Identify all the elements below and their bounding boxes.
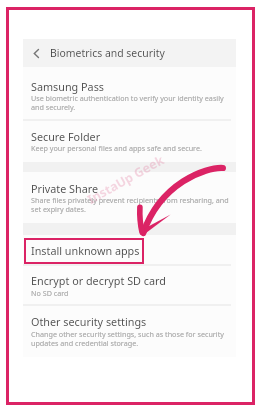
staticText: Secure Folder [31, 129, 101, 144]
staticText: Encrypt or decrypt SD card [31, 273, 166, 288]
button[interactable] [23, 72, 236, 119]
staticText: Install unknown apps [31, 243, 140, 258]
staticText: InstaUp Geek [84, 151, 168, 208]
staticText: No SD card [31, 288, 69, 298]
button[interactable]: Back [26, 43, 46, 63]
staticText: Other security settings [31, 314, 147, 329]
staticText: Change other security settings, such as … [31, 329, 232, 348]
button[interactable] [23, 266, 236, 304]
button[interactable] [23, 172, 236, 223]
button[interactable] [23, 121, 236, 162]
staticText: Private Share [31, 181, 99, 196]
staticText: Use biometric authentication to verify y… [31, 93, 232, 112]
staticText: Biometrics and security [50, 46, 165, 60]
button[interactable] [23, 306, 236, 351]
staticText: Keep your personal files and apps safe a… [31, 143, 202, 153]
staticText: Samsung Pass [31, 79, 104, 94]
button[interactable] [23, 235, 236, 264]
staticText: Share files privately prevent recipients… [31, 195, 232, 214]
